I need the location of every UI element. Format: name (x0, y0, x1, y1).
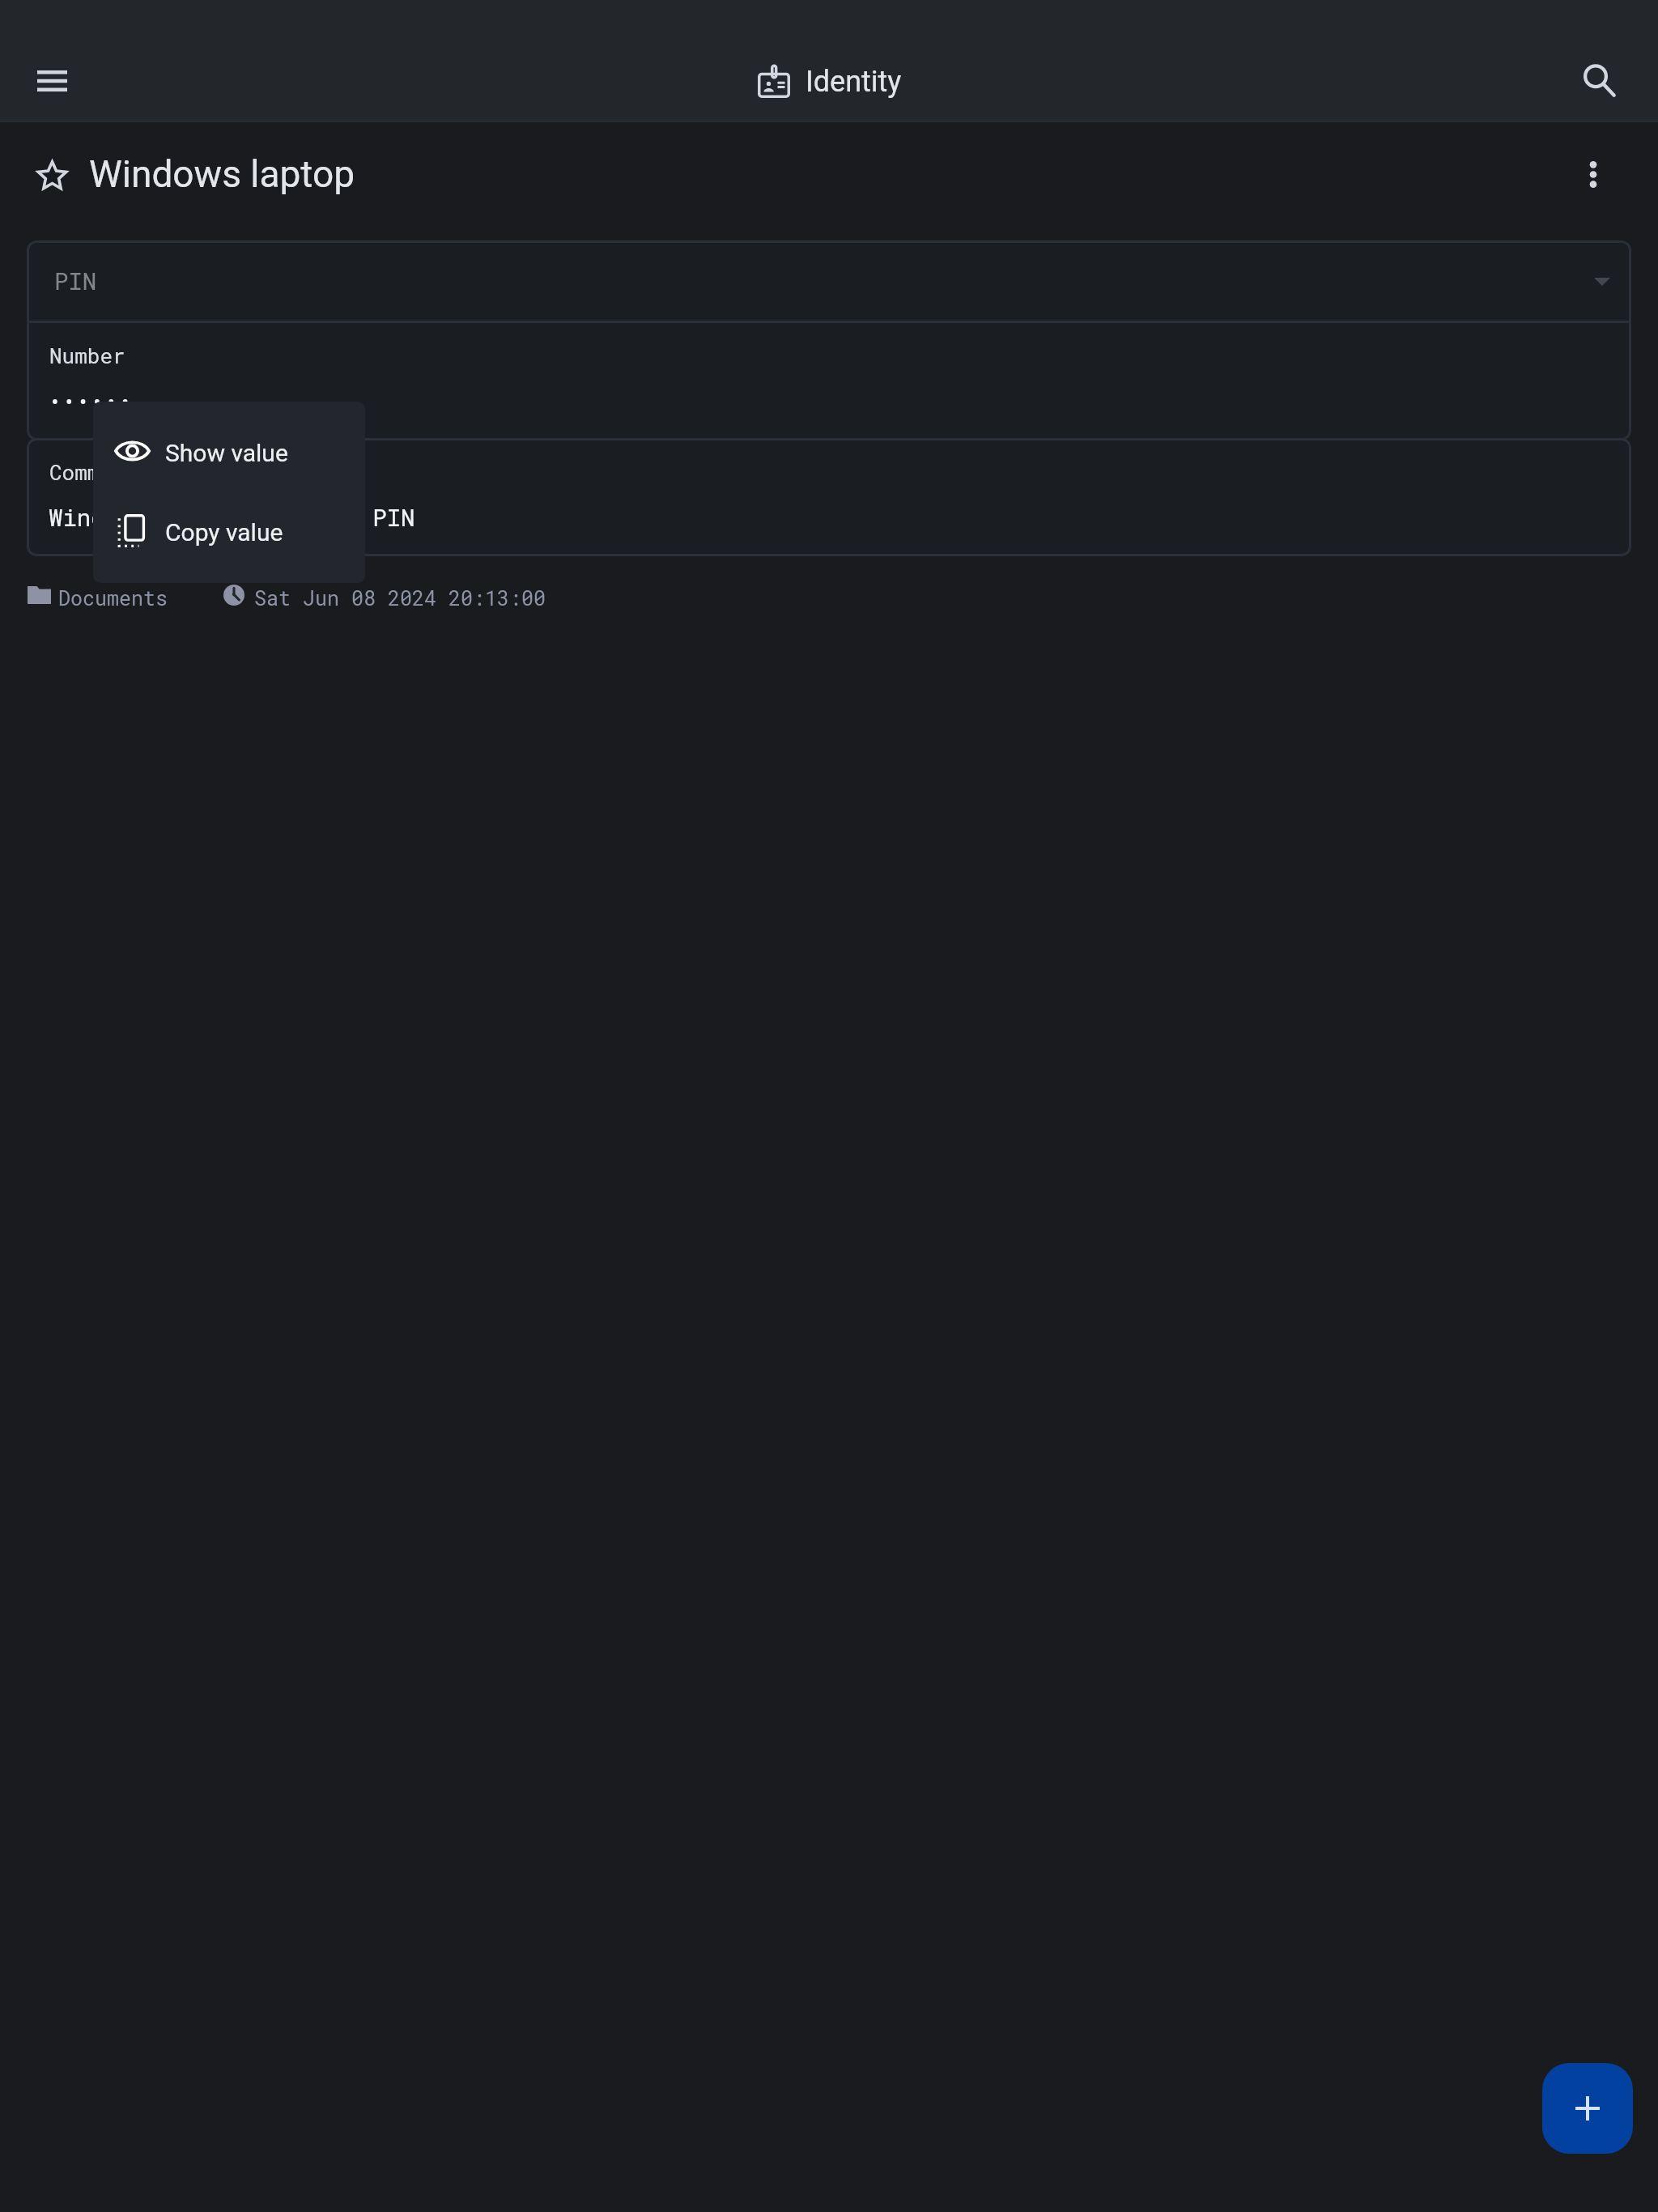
button[interactable]: More options (1556, 137, 1630, 211)
staticText: Number (49, 342, 125, 369)
staticText: Windows laptop (89, 152, 355, 196)
staticText: Copy value (165, 518, 283, 547)
staticText: Windows laptop sign-in PIN (49, 502, 415, 533)
button[interactable]: Add (1542, 2063, 1633, 2154)
staticText: Documents (58, 585, 168, 611)
button[interactable]: Show value (93, 402, 365, 492)
staticText: PIN (54, 266, 97, 296)
button[interactable]: Comment (27, 438, 1631, 556)
button[interactable]: Open navigation menu (15, 44, 89, 118)
button[interactable]: Number (27, 323, 1631, 440)
button[interactable]: Search (1558, 39, 1633, 113)
button[interactable]: PIN (27, 240, 1631, 321)
staticText: Identity (806, 65, 902, 99)
staticText: Sat Jun 08 2024 20:13:00 (254, 585, 546, 611)
staticText: Comment (49, 458, 138, 486)
staticText: Show value (165, 439, 288, 467)
button[interactable]: Copy value (93, 492, 365, 583)
button[interactable]: Favourite (15, 138, 89, 213)
